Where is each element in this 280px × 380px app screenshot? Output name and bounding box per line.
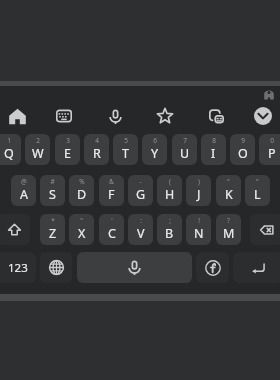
button[interactable]: Voice input: [100, 101, 130, 131]
button[interactable]: Backspace: [250, 214, 280, 245]
button[interactable]: !: [186, 214, 211, 245]
button[interactable]: &: [99, 175, 124, 206]
staticText: O: [238, 145, 248, 162]
button[interactable]: #: [40, 175, 65, 206]
staticText: ?: [227, 216, 230, 225]
staticText: ”: [256, 177, 259, 186]
button[interactable]: 8: [201, 134, 226, 165]
staticText: 8: [212, 136, 216, 145]
button[interactable]: *: [40, 214, 65, 245]
button[interactable]: Assistant: [264, 89, 274, 99]
staticText: A: [20, 186, 28, 203]
staticText: N: [194, 225, 204, 242]
button[interactable]: 6: [142, 134, 167, 165]
button[interactable]: Symbols: [0, 252, 36, 283]
staticText: 123: [8, 260, 28, 276]
staticText: 4: [95, 136, 99, 145]
button[interactable]: 4: [84, 134, 109, 165]
staticText: *: [51, 216, 55, 225]
button[interactable]: 7: [172, 134, 197, 165]
staticText: 2: [36, 136, 40, 145]
button[interactable]: Floating keyboard: [201, 101, 231, 131]
button[interactable]: Emoji: [196, 252, 229, 283]
staticText: 9: [241, 136, 245, 145]
staticText: @: [21, 177, 27, 186]
staticText: #: [50, 177, 55, 186]
staticText: H: [165, 186, 175, 203]
button[interactable]: 3: [55, 134, 80, 165]
button[interactable]: ?: [216, 214, 241, 245]
button[interactable]: 9: [230, 134, 255, 165]
staticText: S: [49, 186, 56, 203]
button[interactable]: Enter: [233, 252, 280, 283]
staticText: 3: [66, 136, 70, 145]
staticText: :: [140, 216, 142, 225]
staticText: Z: [49, 225, 57, 242]
staticText: M: [223, 225, 235, 242]
staticText: C: [108, 225, 116, 242]
staticText: &: [109, 177, 114, 186]
staticText: ": [80, 216, 83, 225]
staticText: 6: [153, 136, 157, 145]
staticText: T: [122, 145, 129, 162]
button[interactable]: 0: [259, 134, 280, 165]
staticText: B: [165, 225, 174, 242]
staticText: ): [198, 177, 200, 186]
staticText: Q: [4, 145, 14, 162]
staticText: W: [32, 145, 44, 162]
staticText: 0: [270, 136, 274, 145]
staticText: !: [198, 216, 200, 225]
button[interactable]: @: [11, 175, 36, 206]
staticText: Y: [151, 145, 159, 162]
staticText: K: [225, 186, 233, 203]
staticText: I: [211, 145, 216, 162]
button[interactable]: Shift: [0, 214, 30, 245]
staticText: ': [111, 216, 113, 225]
staticText: “: [227, 177, 230, 186]
staticText: D: [77, 186, 87, 203]
staticText: U: [180, 145, 190, 162]
staticText: %: [79, 177, 85, 186]
button[interactable]: Home: [2, 101, 32, 131]
staticText: ;: [169, 216, 171, 225]
button[interactable]: ): [186, 175, 211, 206]
button[interactable]: ;: [157, 214, 182, 245]
button[interactable]: Collapse keyboard: [254, 107, 272, 125]
staticText: V: [137, 225, 145, 242]
button[interactable]: ": [69, 214, 94, 245]
button[interactable]: Space: [77, 252, 192, 283]
staticText: J: [197, 186, 201, 203]
button[interactable]: Stickers: [150, 101, 180, 131]
staticText: L: [254, 186, 261, 203]
staticText: (: [169, 177, 171, 186]
button[interactable]: :: [128, 214, 153, 245]
button[interactable]: Switch keyboard: [49, 101, 79, 131]
staticText: 7: [183, 136, 187, 145]
staticText: 1: [7, 136, 11, 145]
button[interactable]: 1: [0, 134, 21, 165]
button[interactable]: 5: [113, 134, 138, 165]
button[interactable]: -: [128, 175, 153, 206]
button[interactable]: ”: [245, 175, 270, 206]
button[interactable]: “: [216, 175, 241, 206]
button[interactable]: 2: [25, 134, 50, 165]
staticText: X: [78, 225, 86, 242]
staticText: -: [139, 177, 142, 186]
button[interactable]: %: [69, 175, 94, 206]
button[interactable]: ': [99, 214, 124, 245]
staticText: P: [268, 145, 276, 162]
staticText: E: [64, 145, 71, 162]
staticText: 5: [124, 136, 128, 145]
button[interactable]: Change keyboard language: [40, 252, 72, 283]
staticText: F: [108, 186, 115, 203]
button[interactable]: (: [157, 175, 182, 206]
staticText: R: [93, 145, 101, 162]
staticText: G: [136, 186, 146, 203]
